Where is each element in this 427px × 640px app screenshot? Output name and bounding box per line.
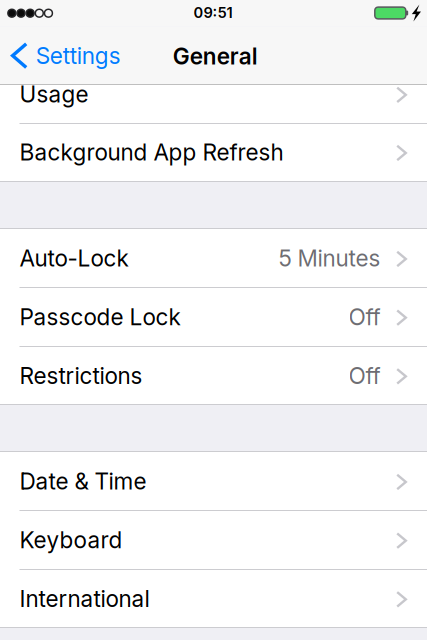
- button[interactable]: Settings: [0, 27, 131, 85]
- staticText: Date & Time: [19, 468, 146, 495]
- staticText: Off: [348, 303, 380, 331]
- button[interactable]: Restrictions: [0, 346, 427, 405]
- staticText: Usage: [19, 80, 88, 108]
- staticText: Keyboard: [19, 526, 122, 554]
- staticText: Background App Refresh: [19, 139, 283, 166]
- button[interactable]: Keyboard: [0, 511, 427, 569]
- staticText: Passcode Lock: [19, 303, 180, 331]
- button[interactable]: International: [0, 569, 427, 628]
- staticText: 09:51: [193, 4, 232, 21]
- button[interactable]: Auto-Lock: [0, 229, 427, 288]
- staticText: 5 Minutes: [278, 245, 380, 272]
- staticText: General: [173, 43, 258, 70]
- staticText: Auto-Lock: [19, 245, 128, 272]
- staticText: Off: [348, 362, 380, 389]
- staticText: Restrictions: [19, 362, 142, 389]
- button[interactable]: Background App Refresh: [0, 123, 427, 182]
- staticText: Settings: [36, 42, 121, 69]
- button[interactable]: Usage: [0, 75, 427, 113]
- staticText: International: [19, 585, 149, 612]
- button[interactable]: Date & Time: [0, 452, 427, 511]
- button[interactable]: Passcode Lock: [0, 288, 427, 346]
